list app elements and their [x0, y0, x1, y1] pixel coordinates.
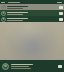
button[interactable]: Avatar — [0, 10, 64, 16]
button[interactable]: Open — [59, 6, 63, 9]
button[interactable]: Avatar — [0, 16, 64, 22]
button[interactable]: Profile — [0, 60, 64, 72]
button[interactable] — [0, 0, 64, 4]
other: Profile — [2, 63, 9, 70]
other: Avatar — [1, 5, 6, 10]
other: Avatar — [1, 11, 6, 16]
button[interactable]: Avatar — [0, 4, 64, 10]
button[interactable]: Action — [58, 65, 62, 68]
button[interactable]: Open — [59, 12, 63, 15]
other: Avatar — [1, 17, 6, 22]
button[interactable]: Open — [59, 18, 63, 21]
